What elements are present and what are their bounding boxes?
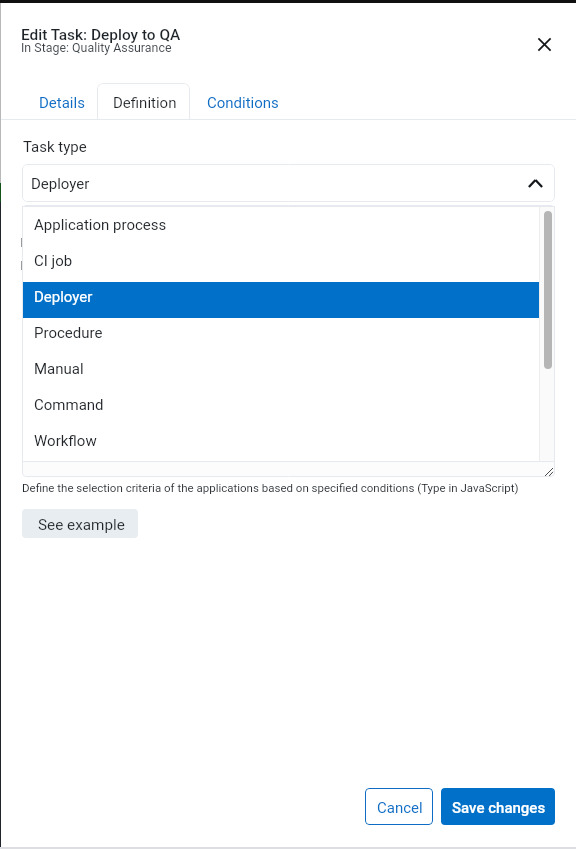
staticText: Application process <box>34 216 167 234</box>
button[interactable] <box>97 83 190 120</box>
button[interactable] <box>441 788 555 825</box>
button[interactable] <box>23 351 539 387</box>
staticText: Procedure <box>34 324 103 342</box>
staticText: Command <box>34 396 104 414</box>
button[interactable] <box>22 509 138 538</box>
button[interactable]: Close dialog <box>524 24 565 65</box>
button[interactable] <box>23 315 539 351</box>
staticText: Workflow <box>34 432 97 450</box>
staticText: Cancel <box>377 799 423 817</box>
button[interactable] <box>190 83 293 120</box>
button[interactable]: Collapse list <box>22 164 555 202</box>
staticText: Deployer <box>34 288 93 306</box>
other: Collapse list <box>528 179 543 188</box>
staticText: Definition <box>113 94 177 112</box>
button[interactable] <box>23 243 539 279</box>
staticText: Edit Task: Deploy to QA <box>21 26 181 44</box>
button[interactable] <box>23 83 97 120</box>
button[interactable] <box>23 279 539 315</box>
staticText: Task type <box>23 138 87 156</box>
button[interactable] <box>23 207 539 243</box>
staticText: Manual <box>34 360 84 378</box>
staticText: See example <box>38 516 125 534</box>
button[interactable] <box>23 423 539 459</box>
staticText: Conditions <box>207 94 279 112</box>
button[interactable] <box>23 387 539 423</box>
staticText: Save changes <box>452 799 546 817</box>
staticText: Details <box>39 94 85 112</box>
staticText: CI job <box>34 252 73 270</box>
button[interactable] <box>365 788 433 825</box>
staticText: Define the selection criteria of the app… <box>22 481 519 494</box>
staticText: Deployer <box>31 175 90 193</box>
staticText: In Stage: Quality Assurance <box>21 40 172 55</box>
